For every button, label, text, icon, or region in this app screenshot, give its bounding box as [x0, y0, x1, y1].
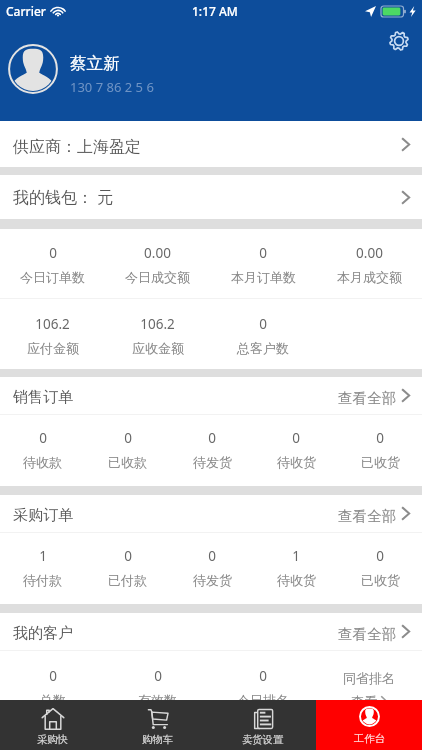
staticText: 0 [49, 244, 57, 262]
staticText: 总数 [40, 692, 66, 708]
staticText: 0 [259, 315, 267, 333]
staticText: 销售订单 [13, 388, 73, 407]
staticText: 已收货 [361, 572, 400, 588]
button[interactable]: 工作台 [316, 700, 422, 750]
staticText: 卖货设置 [242, 733, 284, 746]
staticText: 0 [124, 429, 132, 447]
staticText: 0 [154, 667, 162, 685]
staticText: 0 [39, 429, 47, 447]
button[interactable]: 购物车 [105, 700, 210, 750]
staticText: 我的钱包： 元 [13, 186, 114, 208]
staticText: 本月订单数 [231, 269, 296, 285]
staticText: 应付金额 [27, 340, 79, 356]
button[interactable]: 采购快 [0, 700, 105, 750]
staticText: 0 [376, 429, 384, 447]
button[interactable]: 我的客户 [0, 613, 422, 650]
staticText: 供应商：上海盈定 [13, 137, 141, 157]
staticText: 已收货 [361, 454, 400, 470]
staticText: 今日成交额 [125, 269, 190, 285]
staticText: 106.2 [140, 315, 175, 333]
staticText: 0 [376, 547, 384, 565]
staticText: 待付款 [23, 572, 62, 588]
staticText: 采购快 [37, 733, 68, 746]
staticText: 0 [292, 429, 300, 447]
staticText: 1 [292, 547, 300, 565]
staticText: 待收货 [277, 454, 316, 470]
staticText: 1:17 AM [192, 3, 238, 19]
staticText: 购物车 [142, 733, 173, 746]
staticText: 已付款 [108, 572, 147, 588]
staticText: 0.00 [356, 244, 383, 262]
staticText: 106.2 [35, 315, 70, 333]
staticText: 同省排名 [343, 670, 395, 686]
staticText: 有效数 [138, 692, 177, 708]
staticText: 待发货 [193, 572, 232, 588]
staticText: 今日排名 [237, 692, 289, 708]
staticText: 待发货 [193, 454, 232, 470]
staticText: 已收款 [108, 454, 147, 470]
button[interactable]: 卖货设置 [210, 700, 316, 750]
staticText: 我的客户 [13, 624, 73, 643]
staticText: 0.00 [144, 244, 171, 262]
staticText: 0 [124, 547, 132, 565]
staticText: 0 [259, 667, 267, 685]
staticText: 蔡立新 [70, 53, 120, 74]
staticText: 工作台 [354, 732, 385, 745]
staticText: 今日订单数 [20, 269, 85, 285]
staticText: 0 [208, 547, 216, 565]
button[interactable]: 供应商：上海盈定 [0, 121, 422, 167]
staticText: 0 [259, 244, 267, 262]
button[interactable]: 我的钱包： 元 [0, 175, 422, 219]
staticText: 查看全部 [338, 507, 396, 525]
staticText: Carrier [6, 3, 46, 19]
button[interactable]: 采购订单 [0, 495, 422, 532]
button[interactable]: 销售订单 [0, 377, 422, 414]
staticText: 查看 [351, 693, 377, 709]
staticText: 130 7 86 2 5 6 [70, 78, 154, 96]
staticText: 本月成交额 [337, 269, 402, 285]
staticText: 采购订单 [13, 506, 73, 525]
staticText: 查看全部 [338, 625, 396, 643]
staticText: 查看全部 [338, 389, 396, 407]
button[interactable]: 同省排名 [316, 670, 422, 709]
staticText: 待收货 [277, 572, 316, 588]
staticText: 0 [208, 429, 216, 447]
staticText: 0 [49, 667, 57, 685]
staticText: 应收金额 [132, 340, 184, 356]
staticText: 待收款 [23, 454, 62, 470]
button[interactable]: Settings [389, 31, 409, 51]
staticText: 1 [39, 547, 47, 565]
staticText: 总客户数 [237, 340, 289, 356]
